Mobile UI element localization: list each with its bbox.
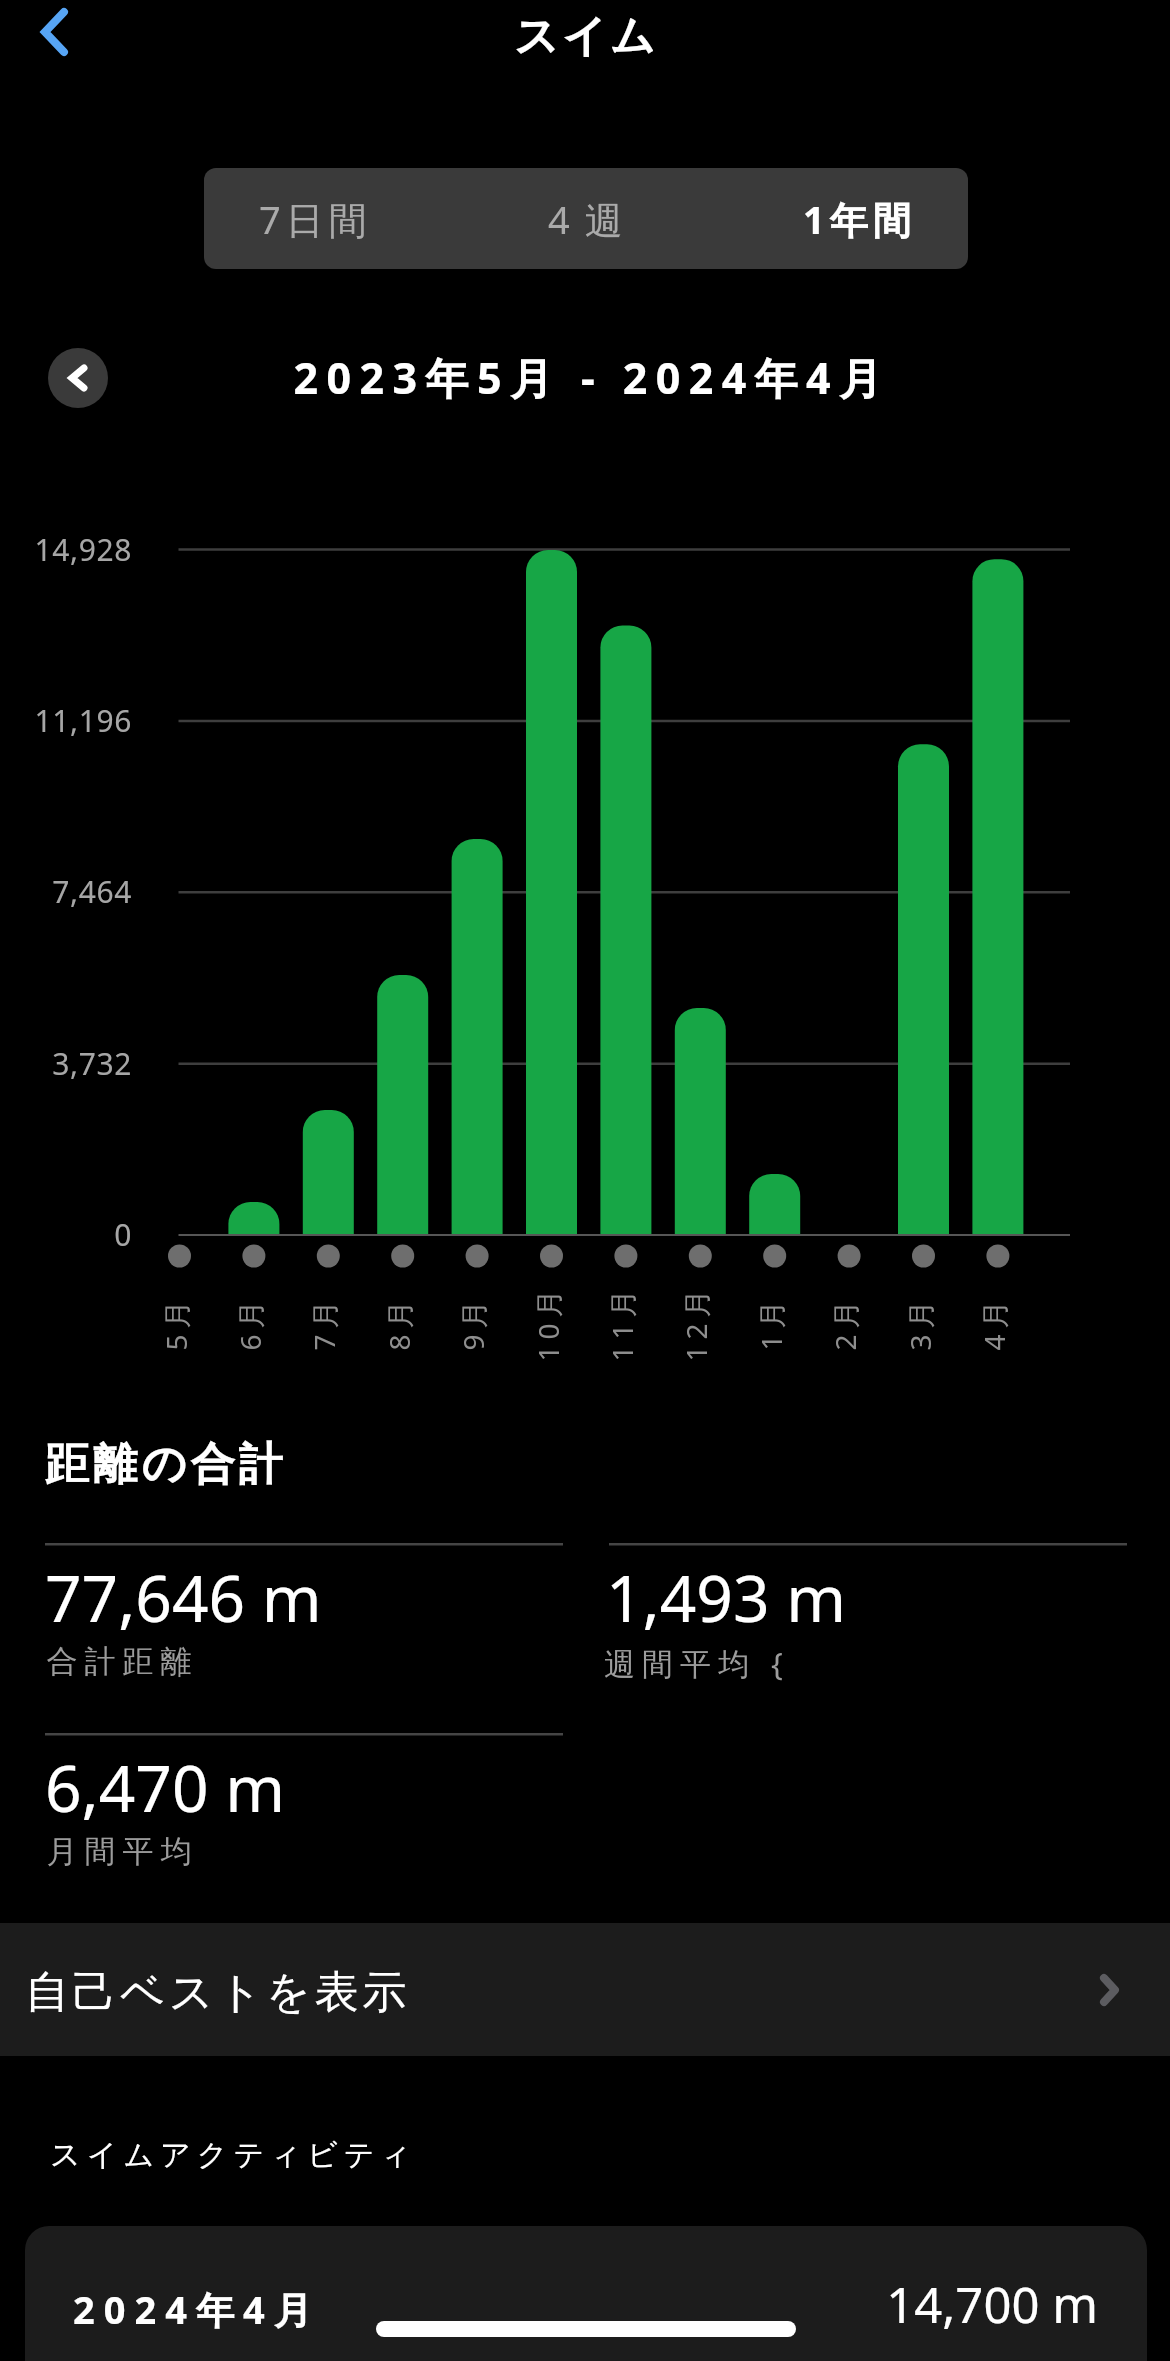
staticText: 7日間 [259,193,372,245]
staticText: 8月 [379,1293,417,1350]
button[interactable]: Previous period [48,348,108,408]
staticText: 6月 [230,1293,268,1350]
staticText: 2月 [825,1293,863,1350]
staticText: 12月 [676,1282,714,1361]
staticText: 3月 [900,1293,938,1350]
staticText: 0 [0,1214,132,1255]
staticText: 7月 [304,1293,342,1350]
staticText: 2024年4月 [73,2283,321,2335]
staticText: 5月 [156,1293,194,1350]
staticText: 14,700 m [25,2271,1098,2338]
button[interactable]: 1年間 [729,168,968,269]
button[interactable]: 2024年4月 [25,2226,1147,2361]
staticText: 自己ベストを表示 [25,1965,410,2020]
staticText: 7,464 [0,871,132,912]
staticText: 1,493 m [606,1554,847,1641]
button[interactable]: Back [0,0,120,80]
staticText: 合計距離 [43,1642,195,1681]
staticText: 9月 [453,1293,491,1350]
staticText: 1月 [751,1293,789,1350]
staticText: 11月 [602,1282,640,1361]
staticText: スイムアクティビティ [50,2136,418,2174]
button[interactable]: 7日間 [204,168,439,269]
staticText: 距離の合計 [45,1437,288,1492]
staticText: 6,470 m [45,1744,286,1831]
staticText: 3,732 [0,1043,132,1084]
staticText: スイム [1,9,1170,64]
staticText: 4週 [548,193,638,245]
staticText: 11,196 [0,700,132,741]
staticText: 2023年5月 - 2024年4月 [7,348,1170,407]
button[interactable]: 4週 [458,168,712,269]
staticText: 77,646 m [45,1554,322,1641]
staticText: 4月 [974,1293,1012,1350]
button[interactable]: 自己ベストを表示 [0,1923,1170,2056]
staticText: 1年間 [803,193,916,245]
staticText: 10月 [528,1282,566,1361]
staticText: 週間平均 { [604,1642,790,1684]
staticText: 14,928 [0,529,132,570]
staticText: 月間平均 [43,1832,195,1871]
